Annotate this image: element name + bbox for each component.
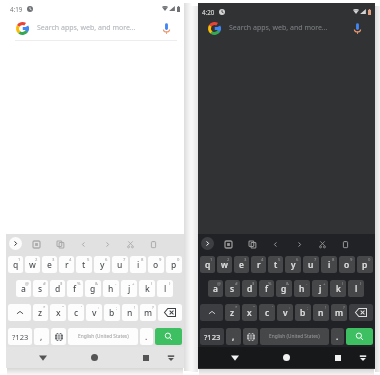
button[interactable]: e: [234, 256, 249, 273]
button[interactable]: .: [331, 328, 344, 345]
button[interactable]: q: [8, 256, 23, 273]
button[interactable]: Hide keyboard: [354, 347, 372, 368]
button[interactable]: y: [285, 256, 301, 273]
button[interactable]: Clipboard: [339, 238, 351, 250]
button[interactable]: r: [251, 256, 266, 273]
button[interactable]: Recents: [137, 347, 155, 368]
button[interactable]: Google: [14, 20, 30, 36]
button[interactable]: a: [16, 280, 31, 297]
button[interactable]: x: [50, 304, 66, 321]
button[interactable]: a: [208, 280, 223, 297]
staticText: ?123: [204, 332, 221, 342]
button[interactable]: z: [225, 304, 240, 321]
button[interactable]: d: [242, 280, 257, 297]
button[interactable]: o: [339, 256, 355, 273]
button[interactable]: h: [294, 280, 310, 297]
button[interactable]: Hide keyboard: [162, 347, 180, 368]
button[interactable]: i: [321, 256, 337, 273]
button[interactable]: More tools: [201, 237, 214, 250]
button[interactable]: r: [59, 256, 74, 273]
button[interactable]: ?123: [200, 328, 224, 345]
button[interactable]: Previous: [77, 238, 89, 250]
button[interactable]: Voice search: [158, 20, 174, 36]
button[interactable]: k: [139, 280, 155, 297]
button[interactable]: n: [122, 304, 138, 321]
button[interactable]: More tools: [9, 237, 22, 250]
button[interactable]: m: [140, 304, 156, 321]
button[interactable]: Cut: [124, 238, 136, 250]
button[interactable]: j: [121, 280, 137, 297]
staticText: p: [362, 259, 368, 271]
button[interactable]: Back: [226, 347, 244, 368]
staticText: z: [230, 307, 235, 319]
button[interactable]: s: [33, 280, 48, 297]
button[interactable]: Cut: [316, 238, 328, 250]
button[interactable]: e: [42, 256, 57, 273]
button[interactable]: h: [103, 280, 119, 297]
button[interactable]: Previous: [269, 238, 281, 250]
button[interactable]: Clipboard: [147, 238, 159, 250]
button[interactable]: b: [295, 304, 311, 321]
staticText: ?123: [12, 332, 29, 342]
button[interactable]: Stickers: [222, 238, 234, 250]
button[interactable]: i: [130, 256, 146, 273]
button[interactable]: w: [217, 256, 232, 273]
button[interactable]: .: [140, 328, 153, 345]
button[interactable]: w: [25, 256, 40, 273]
button[interactable]: v: [86, 304, 102, 321]
button[interactable]: s: [225, 280, 240, 297]
button[interactable]: Shift: [8, 304, 31, 321]
button[interactable]: Stickers: [30, 238, 42, 250]
button[interactable]: b: [104, 304, 120, 321]
button[interactable]: Home: [277, 347, 295, 368]
button[interactable]: l: [157, 280, 173, 297]
staticText: 3: [52, 257, 55, 263]
button[interactable]: ?123: [8, 328, 32, 345]
button[interactable]: d: [50, 280, 65, 297]
button[interactable]: t: [76, 256, 92, 273]
button[interactable]: g: [276, 280, 292, 297]
button[interactable]: m: [331, 304, 347, 321]
button[interactable]: l: [348, 280, 364, 297]
button[interactable]: f: [259, 280, 274, 297]
button[interactable]: v: [277, 304, 293, 321]
button[interactable]: Backspace: [158, 304, 182, 321]
button[interactable]: c: [68, 304, 84, 321]
button[interactable]: x: [242, 304, 257, 321]
button[interactable]: Copy: [246, 238, 258, 250]
button[interactable]: English (United States): [260, 328, 329, 345]
button[interactable]: f: [67, 280, 83, 297]
button[interactable]: Change language: [51, 328, 66, 345]
button[interactable]: u: [303, 256, 319, 273]
button[interactable]: Voice search: [349, 20, 365, 36]
button[interactable]: Search: [155, 328, 182, 345]
staticText: &: [95, 281, 99, 287]
button[interactable]: Recents: [329, 347, 347, 368]
button[interactable]: y: [94, 256, 110, 273]
button[interactable]: c: [259, 304, 275, 321]
button[interactable]: ,: [34, 328, 49, 345]
button[interactable]: Shift: [200, 304, 223, 321]
button[interactable]: Next: [293, 238, 305, 250]
button[interactable]: Change language: [243, 328, 258, 345]
button[interactable]: ,: [226, 328, 241, 345]
button[interactable]: Back: [34, 347, 52, 368]
button[interactable]: English (United States): [68, 328, 138, 345]
button[interactable]: Search: [346, 328, 373, 345]
button[interactable]: q: [200, 256, 215, 273]
button[interactable]: g: [85, 280, 101, 297]
button[interactable]: n: [313, 304, 329, 321]
button[interactable]: o: [148, 256, 164, 273]
button[interactable]: z: [33, 304, 48, 321]
button[interactable]: p: [357, 256, 373, 273]
button[interactable]: Home: [85, 347, 103, 368]
button[interactable]: t: [268, 256, 283, 273]
button[interactable]: u: [112, 256, 128, 273]
button[interactable]: k: [330, 280, 346, 297]
button[interactable]: Next: [101, 238, 113, 250]
button[interactable]: j: [312, 280, 328, 297]
button[interactable]: Copy: [54, 238, 66, 250]
button[interactable]: p: [166, 256, 182, 273]
button[interactable]: Google: [206, 20, 222, 36]
button[interactable]: Backspace: [349, 304, 373, 321]
